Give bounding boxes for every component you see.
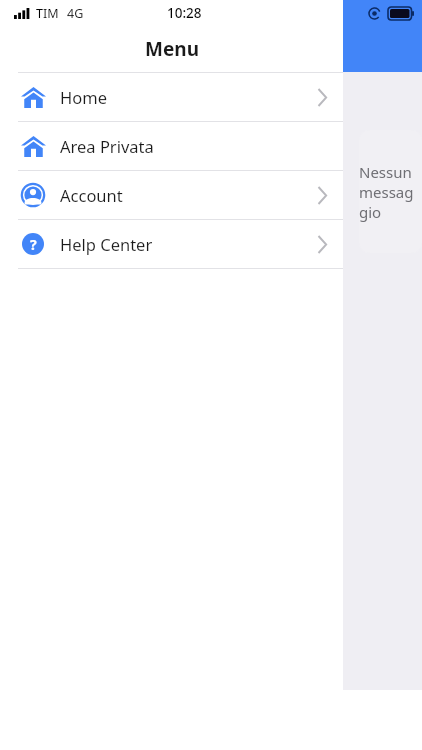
staticText: Ultimi messaggi bbox=[372, 156, 422, 225]
staticText: ? bbox=[30, 235, 37, 254]
staticText: Account bbox=[60, 184, 123, 206]
staticText: TIM bbox=[36, 5, 59, 22]
button[interactable]: Account bbox=[0, 171, 343, 219]
button[interactable]: Nessun messaggio bbox=[359, 130, 422, 253]
staticText: Home bbox=[60, 86, 107, 108]
staticText: 4G bbox=[67, 5, 84, 22]
staticText: Menu bbox=[145, 36, 199, 62]
button[interactable]: Home bbox=[0, 73, 343, 121]
staticText: 10:28 bbox=[167, 4, 202, 22]
staticText: Nessun messaggio bbox=[359, 162, 422, 222]
button[interactable]: ? bbox=[0, 220, 343, 268]
button[interactable]: Area Privata bbox=[0, 122, 343, 170]
staticText: Area Privata bbox=[60, 135, 154, 157]
staticText: Help Center bbox=[60, 233, 153, 255]
